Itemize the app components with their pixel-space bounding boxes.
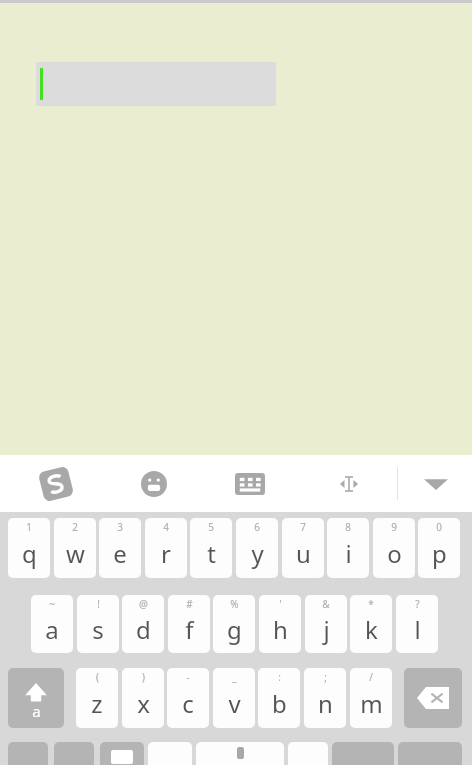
staticText: m xyxy=(360,687,383,720)
staticText: p xyxy=(432,537,447,570)
button[interactable]: 6 xyxy=(236,518,278,578)
staticText: ? xyxy=(415,597,420,611)
staticText: ( xyxy=(96,670,99,684)
staticText: z xyxy=(91,687,103,720)
staticText: s xyxy=(92,613,104,646)
button[interactable] xyxy=(36,62,276,106)
button[interactable]: / xyxy=(350,668,392,728)
staticText: a xyxy=(45,613,59,646)
button[interactable]: 3 xyxy=(99,518,141,578)
staticText: # xyxy=(186,597,193,611)
button[interactable]: Backspace xyxy=(404,668,462,728)
staticText: : xyxy=(278,670,281,684)
staticText: ~ xyxy=(49,597,55,611)
staticText: v xyxy=(228,687,241,720)
button[interactable]: % xyxy=(213,595,255,653)
staticText: d xyxy=(136,613,151,646)
staticText: 9 xyxy=(391,520,397,534)
staticText: 8 xyxy=(345,520,351,534)
button[interactable]: Hide keyboard xyxy=(410,455,462,512)
staticText: x xyxy=(137,687,150,720)
button[interactable]: Key 3 xyxy=(148,742,192,765)
staticText: r xyxy=(161,537,171,570)
staticText: h xyxy=(273,613,288,646)
button[interactable]: 0 xyxy=(418,518,460,578)
staticText: 6 xyxy=(254,520,260,534)
button[interactable]: Key 5 xyxy=(288,742,328,765)
staticText: g xyxy=(227,613,242,646)
button[interactable]: Cursor control xyxy=(323,455,375,512)
button[interactable]: _ xyxy=(213,668,255,728)
button[interactable]: 2 xyxy=(54,518,96,578)
staticText: t xyxy=(207,537,216,570)
button[interactable]: Emoji xyxy=(128,455,180,512)
staticText: 7 xyxy=(300,520,306,534)
button[interactable]: 4 xyxy=(145,518,187,578)
staticText: a xyxy=(32,701,41,721)
staticText: l xyxy=(414,613,421,646)
button[interactable]: ) xyxy=(122,668,164,728)
staticText: q xyxy=(22,537,37,570)
button[interactable]: 7 xyxy=(282,518,324,578)
staticText: @ xyxy=(139,597,148,611)
staticText: y xyxy=(251,537,264,570)
staticText: ) xyxy=(142,670,145,684)
button[interactable]: - xyxy=(167,668,209,728)
button[interactable]: Key 1 xyxy=(54,742,94,765)
staticText: f xyxy=(185,613,194,646)
staticText: i xyxy=(345,537,352,570)
staticText: c xyxy=(182,687,194,720)
button[interactable]: ; xyxy=(304,668,346,728)
button[interactable]: 5 xyxy=(190,518,232,578)
staticText: / xyxy=(369,670,373,684)
button[interactable]: Key 0 xyxy=(8,742,48,765)
button[interactable]: ~ xyxy=(31,595,73,653)
button[interactable]: ! xyxy=(77,595,119,653)
staticText: w xyxy=(66,537,85,570)
staticText: 3 xyxy=(117,520,123,534)
staticText: ! xyxy=(97,597,100,611)
staticText: 0 xyxy=(436,520,442,534)
staticText: _ xyxy=(232,670,237,684)
staticText: ; xyxy=(324,670,327,684)
staticText: & xyxy=(322,597,330,611)
button[interactable]: & xyxy=(305,595,347,653)
staticText: u xyxy=(296,537,311,570)
button[interactable]: * xyxy=(350,595,392,653)
button[interactable]: ? xyxy=(396,595,438,653)
staticText: 1 xyxy=(26,520,32,534)
staticText: n xyxy=(318,687,333,720)
button[interactable]: # xyxy=(168,595,210,653)
staticText: - xyxy=(186,670,190,684)
staticText: b xyxy=(272,687,287,720)
staticText: % xyxy=(230,597,239,611)
staticText: 2 xyxy=(72,520,78,534)
button[interactable]: 9 xyxy=(373,518,415,578)
button[interactable]: SwiftKey xyxy=(30,455,82,512)
staticText: j xyxy=(323,613,330,646)
button[interactable]: Keyboard layout xyxy=(224,455,276,512)
button[interactable]: @ xyxy=(122,595,164,653)
button[interactable]: 1 xyxy=(8,518,50,578)
button[interactable]: 8 xyxy=(327,518,369,578)
button[interactable]: Key 4 xyxy=(196,742,284,765)
button[interactable]: ( xyxy=(76,668,118,728)
button[interactable]: : xyxy=(258,668,300,728)
button[interactable]: Key 2 xyxy=(100,742,144,765)
staticText: e xyxy=(113,537,127,570)
button[interactable]: ' xyxy=(259,595,301,653)
staticText: ' xyxy=(279,597,282,611)
staticText: * xyxy=(368,597,374,611)
staticText: 4 xyxy=(163,520,169,534)
staticText: 5 xyxy=(208,520,214,534)
staticText: o xyxy=(387,537,402,570)
staticText: k xyxy=(365,613,378,646)
button[interactable]: Shift xyxy=(8,668,64,728)
